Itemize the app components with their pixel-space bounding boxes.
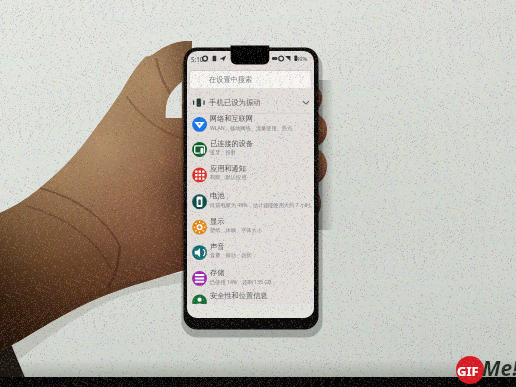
button[interactable]: 显示 bbox=[187, 214, 314, 240]
button[interactable]: 安全性和位置信息 bbox=[187, 288, 314, 314]
staticText: 声音 bbox=[210, 242, 225, 251]
staticText: 应用和通知 bbox=[210, 164, 246, 173]
staticText: 蓝牙、投射 bbox=[210, 149, 236, 156]
button[interactable]: 网络和互联网 bbox=[187, 111, 314, 137]
staticText: GIF bbox=[457, 362, 479, 380]
staticText: 已连接的设备 bbox=[210, 139, 254, 148]
staticText: WLAN、移动网络、流量使用、热点 bbox=[210, 124, 293, 131]
button[interactable]: 手机已设为振动 bbox=[187, 92, 314, 112]
staticText: Me! bbox=[482, 354, 516, 383]
staticText: 已使用 14%、还剩 135 GB bbox=[210, 278, 272, 285]
other: GIF Me watermark bbox=[454, 354, 516, 387]
button[interactable]: 已连接的设备 bbox=[187, 136, 314, 162]
staticText: 音量、振动、勿扰 bbox=[210, 252, 252, 259]
button[interactable]: 存储 bbox=[187, 265, 314, 291]
button[interactable]: 声音 bbox=[187, 239, 314, 265]
staticText: 存储 bbox=[210, 268, 225, 277]
staticText: 目前电量为 49%，估计还能使用大约 7 小时。 bbox=[210, 201, 314, 208]
staticText: 手机已设为振动 bbox=[209, 98, 261, 107]
staticText: 电池 bbox=[210, 191, 225, 200]
staticText: 壁纸、休眠、字体大小 bbox=[210, 227, 262, 234]
staticText: 在设置中搜索 bbox=[209, 75, 253, 84]
button[interactable]: 应用和通知 bbox=[187, 161, 314, 187]
button[interactable]: 电池 bbox=[187, 188, 314, 214]
button[interactable]: 在设置中搜索 bbox=[190, 71, 311, 88]
staticText: 权限、默认应用 bbox=[210, 174, 247, 181]
staticText: 显示 bbox=[210, 217, 225, 226]
staticText: 网络和互联网 bbox=[210, 114, 254, 123]
staticText: 49% bbox=[296, 55, 308, 63]
staticText: 安全性和位置信息 bbox=[210, 291, 268, 300]
staticText: 5:10 bbox=[191, 55, 204, 63]
